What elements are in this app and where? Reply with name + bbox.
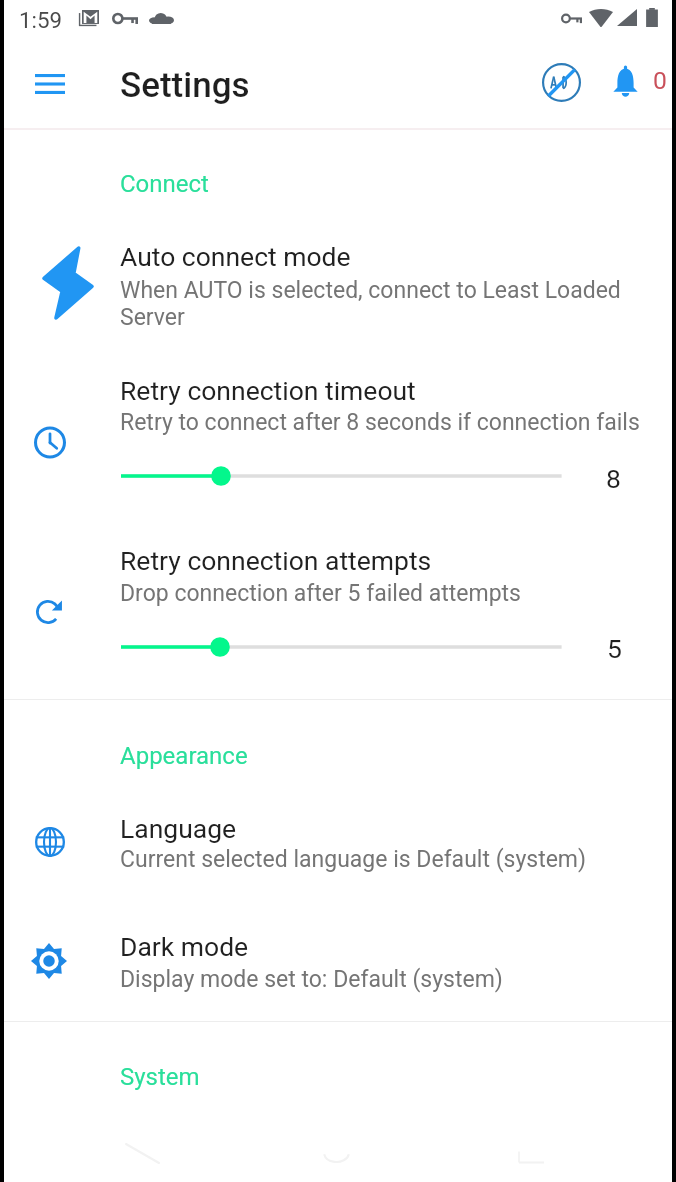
button[interactable]: Slider (105, 460, 585, 492)
button[interactable]: Menu (25, 59, 74, 108)
staticText: Retry connection attempts (120, 545, 432, 576)
button[interactable]: Notifications (598, 55, 652, 109)
staticText: Dark mode (120, 931, 249, 962)
button[interactable] (0, 355, 676, 500)
staticText: When AUTO is selected, connect to Least … (120, 277, 621, 331)
staticText: 5 (607, 633, 622, 664)
staticText: Retry connection timeout (120, 375, 416, 406)
staticText: Current selected language is Default (sy… (120, 846, 587, 873)
staticText: Display mode set to: Default (system) (120, 966, 503, 993)
staticText: 1:59 (19, 7, 62, 33)
staticText: Drop connection after 5 failed attempts (120, 580, 521, 607)
button[interactable]: Block ads (533, 54, 589, 110)
button[interactable]: Slider (105, 631, 585, 663)
staticText: System (120, 1063, 200, 1091)
staticText: Settings (120, 65, 250, 106)
button[interactable] (0, 525, 676, 670)
staticText: Retry to connect after 8 seconds if conn… (120, 409, 640, 436)
staticText: Appearance (120, 742, 248, 770)
button[interactable] (0, 908, 676, 1002)
staticText: Auto connect mode (120, 241, 351, 272)
button[interactable] (0, 215, 676, 350)
staticText: 8 (606, 463, 621, 494)
staticText: 0 (653, 66, 667, 95)
staticText: Language (120, 813, 237, 844)
staticText: Connect (120, 170, 209, 198)
button[interactable] (0, 790, 676, 884)
